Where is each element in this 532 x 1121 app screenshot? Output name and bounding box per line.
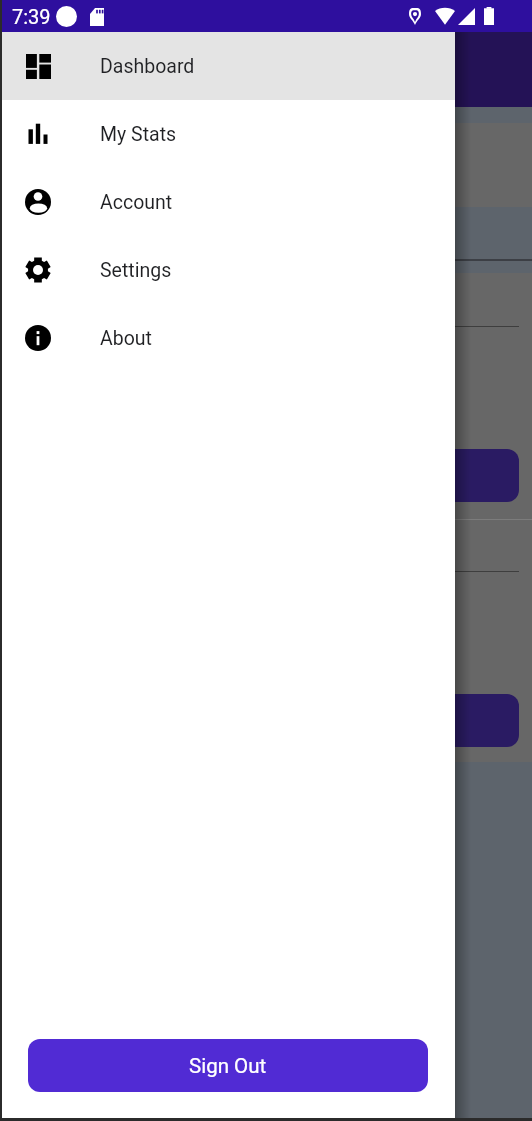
other: Location (409, 8, 421, 25)
staticText: 7:39 (12, 5, 51, 28)
other: Battery (484, 7, 494, 25)
staticText: Account (100, 191, 173, 214)
other: Wi-Fi (435, 7, 455, 25)
staticText: Sign Out (189, 1054, 267, 1078)
button[interactable]: Sign Out (28, 1039, 428, 1092)
other: Notification (56, 6, 77, 27)
staticText: Settings (100, 259, 172, 282)
button[interactable]: About (0, 304, 455, 372)
staticText: Dashboard (100, 55, 195, 78)
staticText: About (100, 327, 152, 350)
button[interactable]: Account (0, 168, 455, 236)
other: SD card (90, 8, 104, 26)
button[interactable]: My Stats (0, 100, 455, 168)
button[interactable]: Settings (0, 236, 455, 304)
button[interactable]: Dashboard (0, 32, 455, 100)
other: Signal (458, 8, 475, 25)
staticText: My Stats (100, 123, 177, 146)
